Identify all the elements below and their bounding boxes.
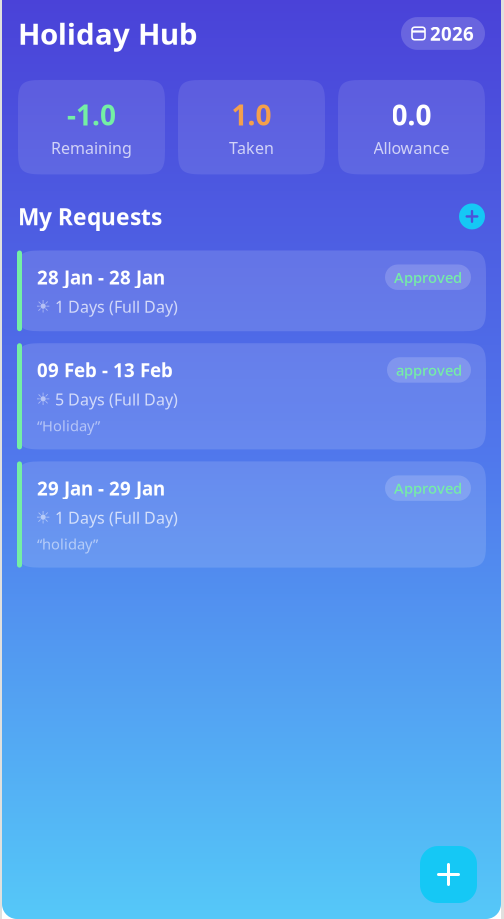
staticText: ☀ bbox=[35, 389, 51, 409]
staticText: 2026 bbox=[430, 21, 474, 46]
staticText: 28 Jan - 28 Jan bbox=[37, 265, 165, 290]
staticText: 1 Days (Full Day) bbox=[55, 507, 178, 528]
staticText: 1 Days (Full Day) bbox=[55, 296, 178, 317]
staticText: “holiday” bbox=[37, 534, 98, 554]
button[interactable]: 09 Feb - 13 Feb bbox=[17, 343, 486, 449]
button[interactable]: 28 Jan - 28 Jan bbox=[17, 250, 486, 331]
staticText: Remaining bbox=[51, 137, 132, 158]
staticText: approved bbox=[396, 360, 462, 380]
staticText: Approved bbox=[394, 478, 462, 498]
staticText: ☀ bbox=[35, 508, 51, 527]
button[interactable]: Add request bbox=[459, 203, 485, 229]
button[interactable]: 2026 bbox=[401, 17, 485, 50]
staticText: 0.0 bbox=[391, 96, 431, 133]
staticText: Approved bbox=[394, 267, 462, 287]
staticText: “Holiday” bbox=[37, 416, 100, 435]
staticText: Allowance bbox=[373, 137, 449, 158]
staticText: 1.0 bbox=[231, 96, 271, 133]
button[interactable]: 29 Jan - 29 Jan bbox=[17, 461, 486, 568]
staticText: Taken bbox=[229, 137, 274, 158]
staticText: ☀ bbox=[35, 297, 51, 316]
staticText: My Requests bbox=[18, 201, 162, 231]
staticText: -1.0 bbox=[67, 96, 116, 133]
staticText: Holiday Hub bbox=[18, 14, 198, 53]
staticText: 5 Days (Full Day) bbox=[55, 389, 178, 410]
staticText: 09 Feb - 13 Feb bbox=[37, 358, 173, 382]
staticText: 29 Jan - 29 Jan bbox=[37, 476, 165, 501]
button[interactable]: New request bbox=[420, 846, 477, 903]
